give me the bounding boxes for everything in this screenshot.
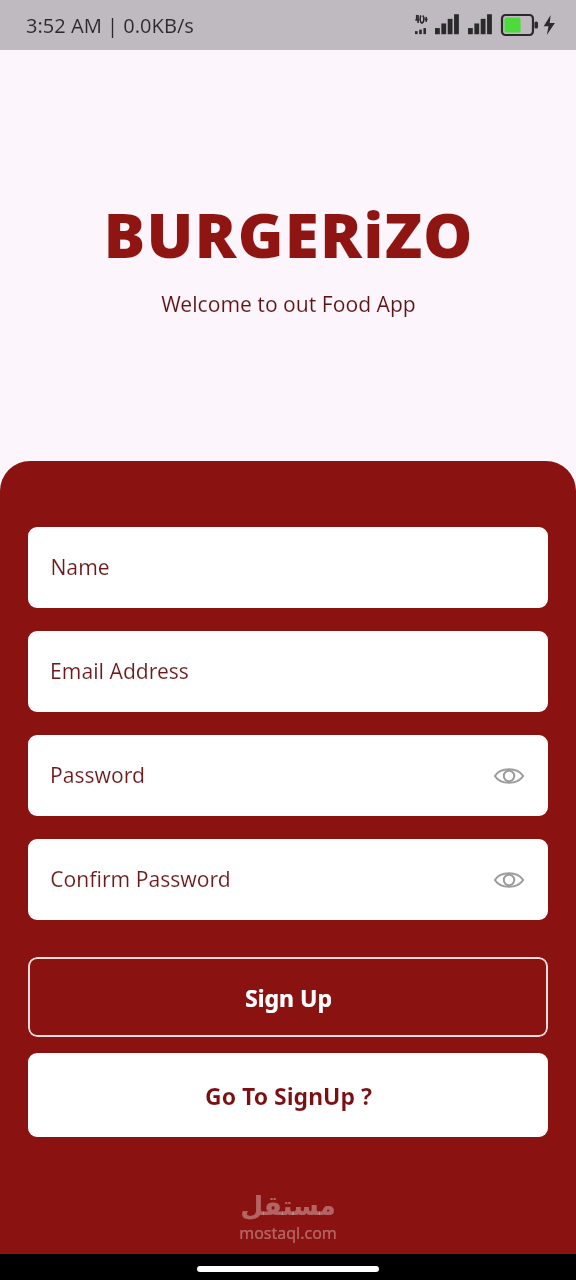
staticText: Password (50, 761, 145, 790)
staticText: Go To SignUp ? (205, 1080, 372, 1111)
button[interactable]: Confirm Password (28, 839, 548, 920)
button[interactable]: Password (28, 735, 548, 816)
button[interactable]: Name (28, 527, 548, 608)
staticText: مستقل (240, 1191, 336, 1221)
button[interactable]: Show password (492, 863, 526, 897)
staticText: mostaql.com (239, 1222, 337, 1244)
staticText: BURGERiZO (103, 192, 474, 276)
staticText: 3:52 AM | 0.0KB/s (26, 12, 194, 39)
button[interactable]: Sign Up (28, 957, 548, 1037)
staticText: Confirm Password (50, 865, 231, 894)
staticText: Sign Up (245, 982, 332, 1013)
button[interactable]: Go To SignUp ? (28, 1053, 548, 1137)
button[interactable]: Email Address (28, 631, 548, 712)
button[interactable]: Show password (492, 759, 526, 793)
staticText: Name (50, 553, 110, 582)
staticText: Email Address (50, 657, 189, 686)
staticText: Welcome to out Food App (161, 290, 416, 319)
